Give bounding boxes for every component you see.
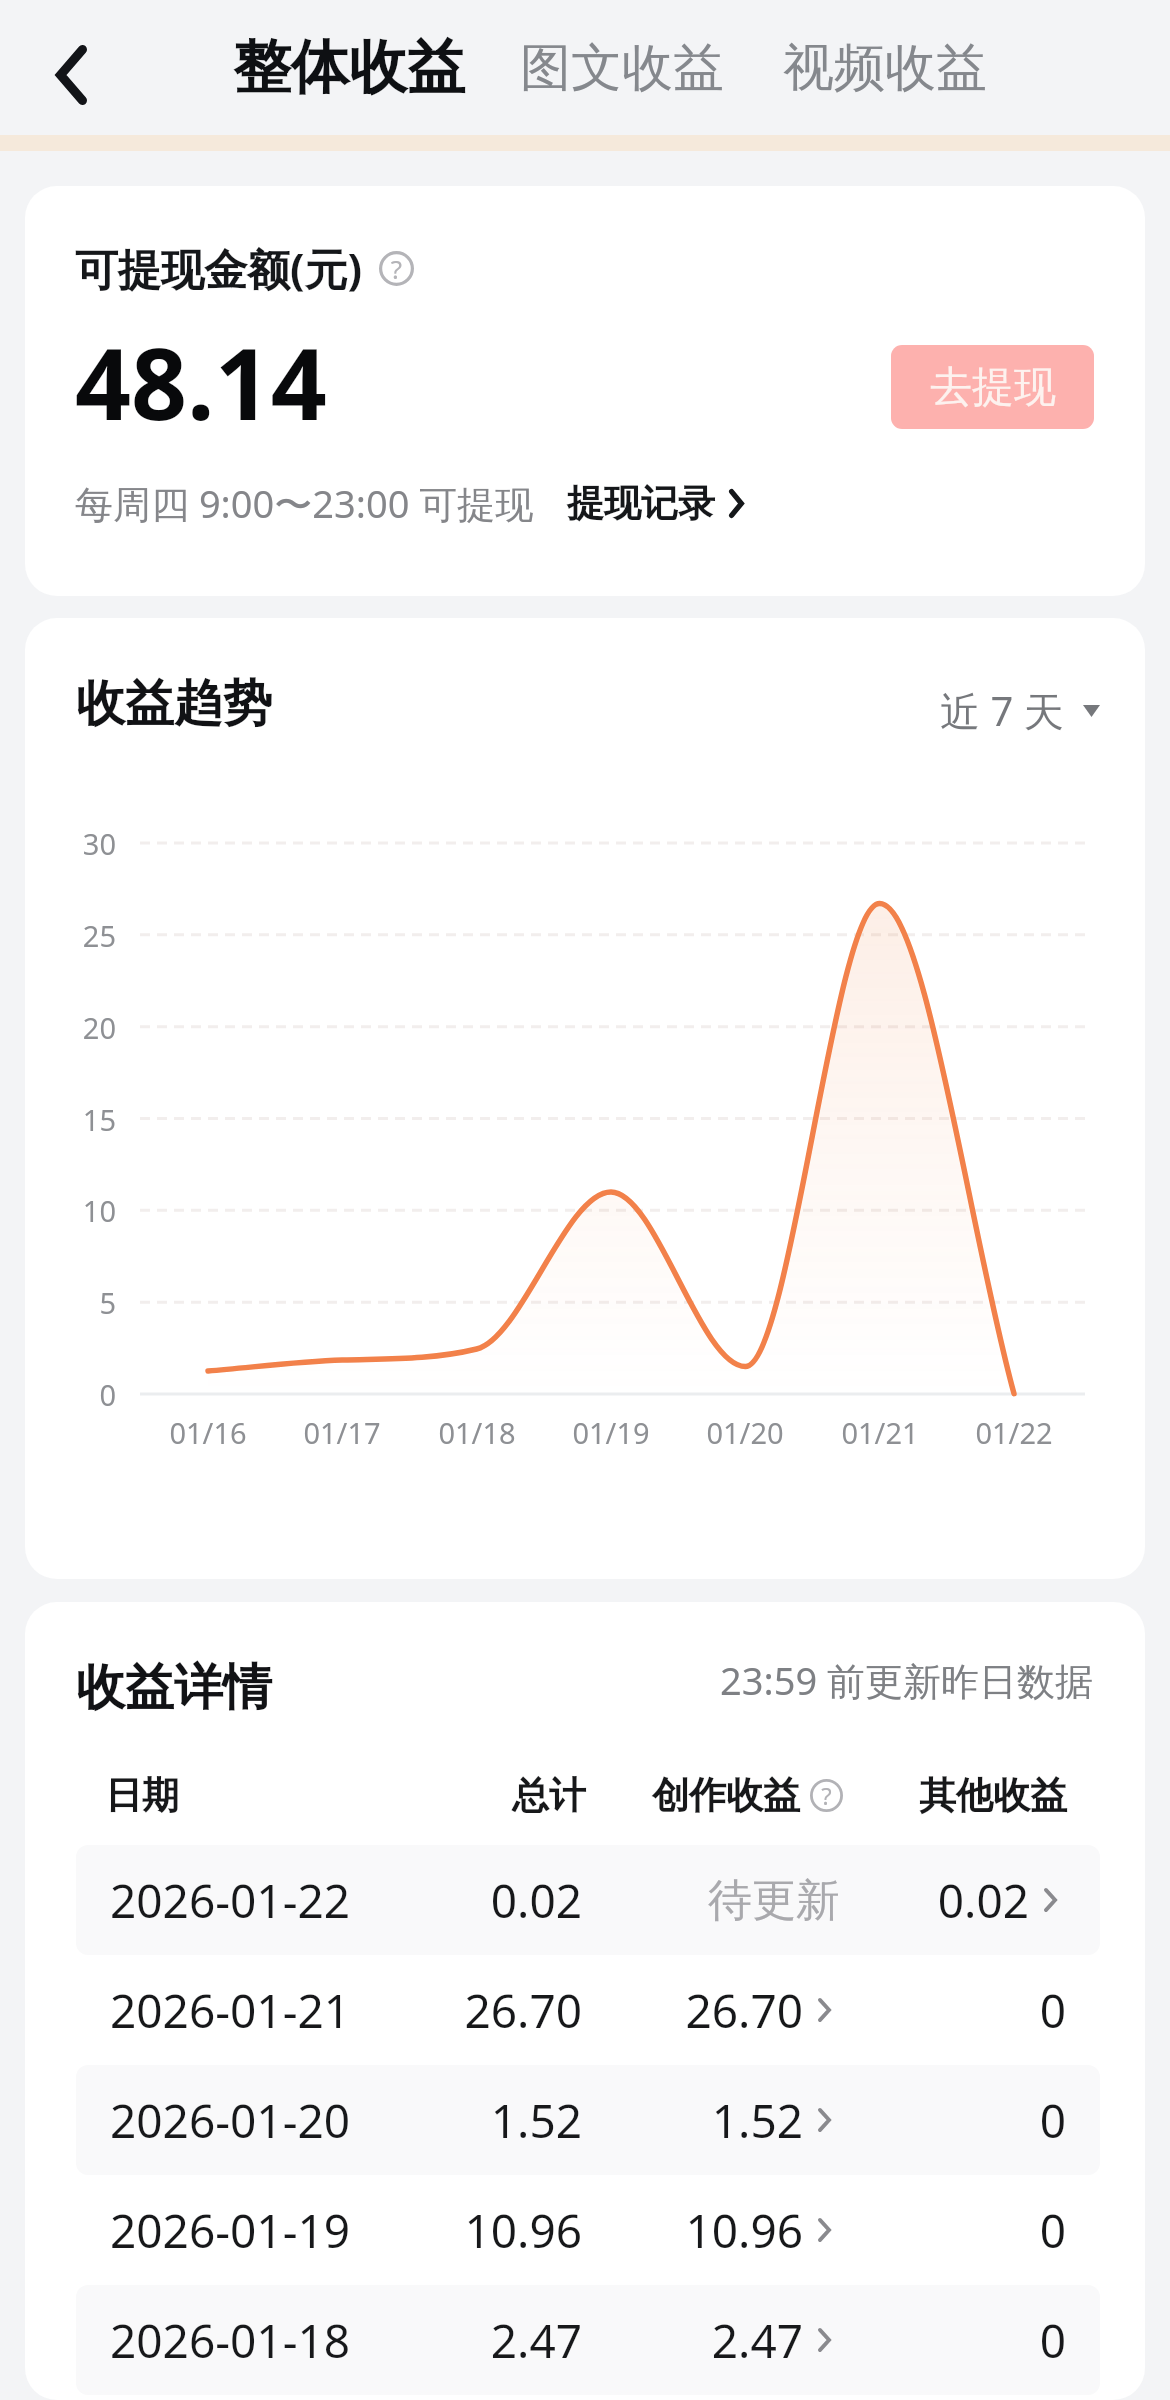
staticText: 2026-01-19 (110, 2199, 351, 2262)
staticText: 视频收益 (783, 36, 987, 100)
staticText: 1.52 (332, 2089, 582, 2152)
staticText: 收益详情 (76, 1657, 272, 1719)
button[interactable]: 图文收益 (520, 36, 724, 100)
staticText: 10 (36, 1191, 116, 1230)
staticText: 提现记录 (567, 480, 715, 527)
staticText: 48.14 (75, 315, 327, 448)
staticText: 整体收益 (233, 31, 465, 104)
staticText: 01/20 (665, 1413, 825, 1452)
button[interactable]: 提现记录 (567, 480, 744, 527)
staticText: 0 (816, 2089, 1066, 2152)
staticText: 0.02 (332, 1869, 582, 1932)
staticText: 0.02 (779, 1869, 1029, 1932)
staticText: 10.96 (553, 2199, 803, 2262)
staticText: 1.52 (553, 2089, 803, 2152)
staticText: 26.70 (553, 1979, 803, 2042)
staticText: 0 (816, 2309, 1066, 2372)
button[interactable]: 2026-01-20 (76, 2065, 1100, 2175)
staticText: 2.47 (332, 2309, 582, 2372)
staticText: 2026-01-22 (110, 1869, 351, 1932)
button[interactable]: 2026-01-22 (76, 1845, 1100, 1955)
staticText: 0 (36, 1375, 116, 1414)
staticText: 0 (816, 1979, 1066, 2042)
staticText: 01/18 (397, 1413, 557, 1452)
staticText: 01/19 (531, 1413, 691, 1452)
staticText: 23:59 前更新昨日数据 (720, 1654, 1094, 1706)
staticText: 30 (36, 824, 116, 863)
staticText: 0 (816, 2199, 1066, 2262)
button[interactable]: 整体收益 (233, 31, 465, 104)
staticText: 其他收益 (817, 1772, 1067, 1819)
staticText: 收益趋势 (76, 673, 272, 735)
staticText: 20 (36, 1008, 116, 1047)
staticText: 2.47 (553, 2309, 803, 2372)
button[interactable]: 2026-01-19 (76, 2175, 1100, 2285)
button[interactable]: 去提现 (891, 345, 1094, 429)
staticText: 01/22 (934, 1413, 1094, 1452)
staticText: ? (379, 251, 414, 286)
staticText: 5 (36, 1283, 116, 1322)
staticText: 去提现 (930, 361, 1056, 414)
staticText: 10.96 (332, 2199, 582, 2262)
staticText: 每周四 9:00〜23:00 可提现 (75, 477, 534, 529)
staticText: 01/16 (128, 1413, 288, 1452)
staticText: 待更新 (590, 1873, 840, 1928)
staticText: 可提现金额(元) (75, 239, 363, 298)
staticText: 25 (36, 916, 116, 955)
staticText: 图文收益 (520, 36, 724, 100)
staticText: 2026-01-21 (110, 1979, 351, 2042)
staticText: 01/21 (800, 1413, 960, 1452)
button[interactable]: 2026-01-21 (76, 1955, 1100, 2065)
staticText: 01/17 (262, 1413, 422, 1452)
button[interactable]: Back (21, 25, 121, 125)
staticText: 2026-01-18 (110, 2309, 351, 2372)
staticText: 总计 (336, 1772, 586, 1819)
staticText: 2026-01-20 (110, 2089, 351, 2152)
staticText: 15 (36, 1100, 116, 1139)
staticText: 日期 (105, 1772, 179, 1819)
button[interactable]: 近 7 天 (940, 683, 1100, 738)
staticText: 26.70 (332, 1979, 582, 2042)
staticText: 近 7 天 (940, 683, 1064, 738)
button[interactable]: 视频收益 (783, 36, 987, 100)
button[interactable]: 2026-01-18 (76, 2285, 1100, 2395)
staticText: 创作收益 (652, 1772, 800, 1819)
staticText: ? (810, 1779, 843, 1812)
